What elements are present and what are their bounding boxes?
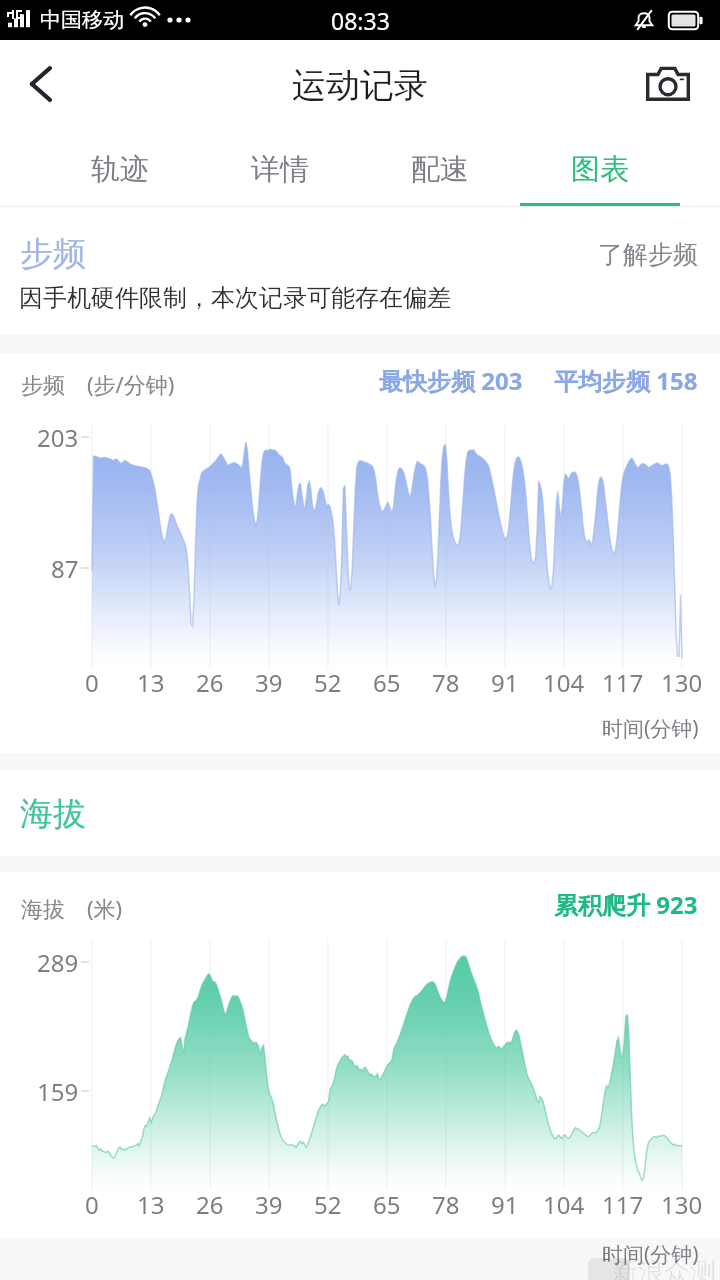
staticText: 117 [602, 666, 644, 699]
staticText: 因手机硬件限制，本次记录可能存在偏差 [19, 283, 451, 313]
staticText: 104 [543, 666, 585, 699]
staticText: 详情 [251, 151, 309, 188]
staticText: 步频 (步/分钟) [21, 369, 175, 399]
staticText: 0 [85, 1188, 99, 1221]
staticText: 52 [314, 666, 342, 699]
button[interactable]: 配速 [360, 128, 520, 206]
staticText: 130 [661, 1188, 703, 1221]
staticText: 104 [543, 1188, 585, 1221]
staticText: 步频 [20, 233, 86, 275]
staticText: 130 [661, 666, 703, 699]
staticText: 26 [196, 1188, 224, 1221]
button[interactable]: Back [0, 40, 84, 128]
staticText: 159 [37, 1075, 79, 1108]
staticText: 0 [85, 666, 99, 699]
button[interactable]: Camera [636, 40, 720, 128]
staticText: 65 [373, 1188, 401, 1221]
staticText: 78 [432, 1188, 460, 1221]
staticText: 配速 [411, 151, 469, 188]
staticText: 65 [373, 666, 401, 699]
staticText: 117 [602, 1188, 644, 1221]
button[interactable]: 详情 [200, 128, 360, 206]
staticText: 海拔 (米) [21, 893, 123, 923]
staticText: 13 [137, 666, 165, 699]
staticText: 26 [196, 666, 224, 699]
staticText: 87 [51, 552, 79, 585]
staticText: 中国移动 [40, 7, 124, 33]
staticText: 203 [37, 421, 79, 454]
staticText: 平均步频 158 [554, 364, 698, 397]
staticText: 轨迹 [91, 151, 149, 188]
button[interactable]: 轨迹 [40, 128, 200, 206]
staticText: 海拔 [20, 793, 86, 835]
staticText: 13 [137, 1188, 165, 1221]
button[interactable]: 了解步频 [598, 239, 698, 270]
staticText: 运动记录 [292, 64, 428, 107]
staticText: 78 [432, 666, 460, 699]
staticText: 图表 [571, 151, 629, 188]
staticText: 52 [314, 1188, 342, 1221]
staticText: 了解步频 [598, 239, 698, 270]
staticText: 累积爬升 923 [554, 888, 698, 921]
staticText: 91 [491, 666, 519, 699]
staticText: 最快步频 203 [379, 364, 523, 397]
staticText: 289 [37, 946, 79, 979]
staticText: 时间(分钟) [602, 1240, 699, 1269]
button[interactable]: 图表 [520, 128, 680, 206]
staticText: 新浪众测 [612, 1256, 716, 1280]
staticText: 91 [491, 1188, 519, 1221]
staticText: 39 [255, 1188, 283, 1221]
staticText: 时间(分钟) [602, 714, 699, 743]
staticText: 39 [255, 666, 283, 699]
staticText: 08:33 [331, 5, 390, 36]
